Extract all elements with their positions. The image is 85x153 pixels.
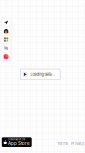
button[interactable]: Files — [2, 44, 10, 52]
button[interactable]: Apps — [2, 36, 10, 43]
staticText: Download on the — [8, 138, 25, 141]
staticText: Privacy — [71, 141, 84, 146]
staticText: App Store — [8, 141, 30, 146]
button[interactable]: Photos — [2, 53, 10, 60]
staticText: Terms — [57, 141, 68, 146]
button[interactable]: Home — [2, 27, 10, 35]
staticText: Loading data… — [30, 72, 54, 77]
button[interactable]: Privacy — [71, 141, 84, 146]
button[interactable]: Send — [2, 19, 10, 26]
button[interactable]: Terms — [57, 141, 68, 146]
button[interactable]: Download on the App Store — [2, 137, 32, 147]
